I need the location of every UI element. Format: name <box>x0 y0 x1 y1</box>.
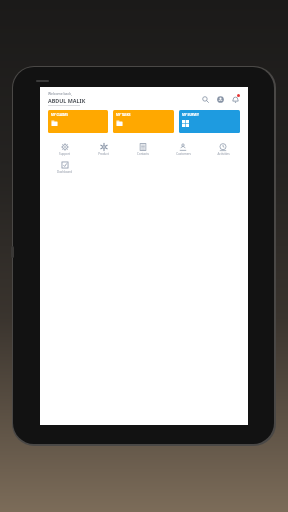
button[interactable]: Search <box>200 94 210 104</box>
button[interactable]: Customers <box>163 142 203 157</box>
button[interactable]: Account <box>215 94 225 104</box>
button[interactable]: Dashboard <box>45 160 84 175</box>
staticText: ABDUL MALIK <box>48 97 86 104</box>
staticText: Welcome back, <box>48 91 72 96</box>
button[interactable]: Activities <box>203 142 243 157</box>
staticText: MY CLAIMS <box>51 113 68 117</box>
button[interactable]: Support <box>45 142 84 157</box>
button[interactable]: Contacts <box>123 142 163 157</box>
staticText: Dashboard <box>57 170 72 174</box>
button[interactable]: MY TASKS <box>113 110 174 133</box>
staticText: Contacts <box>137 152 149 156</box>
staticText: MY TASKS <box>116 113 131 117</box>
staticText: Activities <box>217 152 230 156</box>
button[interactable]: Product <box>84 142 123 157</box>
staticText: Product <box>98 152 109 156</box>
staticText: Customers <box>176 152 191 156</box>
staticText: Support <box>59 152 70 156</box>
button[interactable]: Notifications <box>230 94 240 104</box>
staticText: MY SURVEY <box>182 113 199 117</box>
button[interactable]: MY CLAIMS <box>48 110 108 133</box>
button[interactable]: MY SURVEY <box>179 110 240 133</box>
